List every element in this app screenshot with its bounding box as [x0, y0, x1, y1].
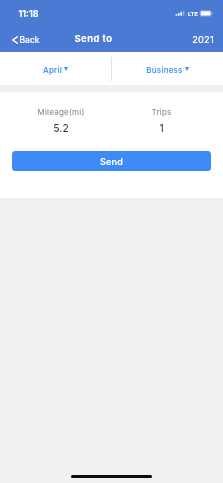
- staticText: Trips: [151, 107, 172, 117]
- staticText: Send to: [74, 33, 113, 44]
- staticText: April: [43, 65, 62, 75]
- staticText: 2021: [192, 34, 214, 45]
- staticText: LTE: [188, 11, 198, 18]
- staticText: Back: [19, 35, 40, 45]
- button[interactable]: Send: [12, 151, 211, 171]
- staticText: 5.2: [53, 122, 69, 134]
- staticText: 1: [159, 122, 164, 134]
- staticText: Mileage(mi): [37, 107, 85, 117]
- button[interactable]: 2021: [188, 30, 218, 49]
- staticText: Business: [146, 65, 183, 75]
- button[interactable]: Business: [111, 52, 223, 85]
- other: Cellular signal and battery status: [175, 9, 215, 17]
- button[interactable]: Back: [9, 33, 44, 47]
- staticText: Send: [100, 156, 123, 167]
- button[interactable]: April: [0, 52, 111, 85]
- staticText: 11:18: [18, 8, 39, 19]
